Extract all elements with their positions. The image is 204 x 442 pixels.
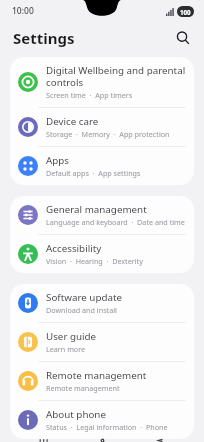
- button[interactable]: Digital Wellbeing and parental controls: [10, 57, 194, 107]
- staticText: About phone: [46, 408, 106, 421]
- button[interactable]: Search: [170, 25, 196, 51]
- staticText: Storage · Memory · App protection: [46, 129, 170, 139]
- button[interactable]: Recents: [30, 439, 58, 442]
- staticText: Download and install: [46, 305, 117, 315]
- button[interactable]: Accessibility: [10, 235, 194, 273]
- button[interactable]: General management: [10, 196, 194, 234]
- staticText: Language and keyboard · Date and time: [46, 217, 185, 227]
- staticText: Remote management: [46, 383, 120, 393]
- button[interactable]: Software update: [10, 284, 194, 322]
- staticText: Screen time · App timers: [46, 90, 133, 100]
- staticText: 100: [180, 8, 191, 16]
- staticText: 10:00: [12, 5, 34, 17]
- staticText: Software update: [46, 291, 122, 304]
- staticText: Settings: [13, 28, 75, 48]
- button[interactable]: User guide: [10, 323, 194, 361]
- button[interactable]: Device care: [10, 108, 194, 146]
- staticText: Remote management: [46, 369, 147, 382]
- staticText: General management: [46, 203, 147, 216]
- staticText: Default apps · App settings: [46, 168, 141, 178]
- staticText: Learn more: [46, 344, 86, 354]
- button[interactable]: Remote management: [10, 362, 194, 400]
- button[interactable]: Back: [146, 439, 174, 442]
- staticText: User guide: [46, 330, 97, 343]
- staticText: Device care: [46, 115, 99, 128]
- staticText: Vision · Hearing · Dexterity: [46, 256, 143, 266]
- staticText: Status · Legal information · Phone name: [46, 422, 186, 432]
- button[interactable]: Home: [88, 439, 116, 442]
- staticText: Apps: [46, 154, 70, 167]
- button[interactable]: About phone: [10, 401, 194, 439]
- staticText: Digital Wellbeing and parental controls: [46, 64, 186, 89]
- button[interactable]: Apps: [10, 147, 194, 185]
- staticText: Accessibility: [46, 242, 102, 255]
